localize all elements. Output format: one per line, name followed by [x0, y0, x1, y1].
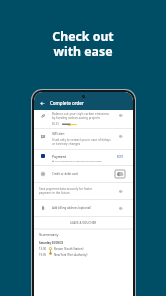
- button[interactable]: EDIT: [116, 154, 125, 160]
- staticText: Payment: [52, 154, 66, 158]
- button[interactable]: Toggle: [119, 114, 123, 117]
- staticText: SMS alert: [52, 132, 65, 136]
- staticText: LEAVE A VOUCHER: [70, 221, 97, 225]
- button[interactable]: Add billing address (optional): [34, 200, 133, 216]
- button[interactable]: Credit or debit card: [34, 166, 133, 182]
- staticText: This transaction is secured and encrypte…: [55, 159, 102, 162]
- staticText: or itinerary changes: [52, 142, 81, 146]
- staticText: Save payment data securely for faster: [39, 187, 93, 191]
- staticText: Boston (South Station): [54, 247, 84, 251]
- staticText: Saturday 03/05/33: [39, 241, 64, 245]
- staticText: payment in the future.: [39, 191, 71, 195]
- staticText: Add billing address (optional): [52, 206, 92, 210]
- staticText: Summary: [39, 231, 59, 237]
- button[interactable]: Toggle: [119, 135, 123, 138]
- staticText: Used only to contact you in case of dela…: [52, 138, 111, 142]
- staticText: 13:00: [39, 247, 47, 251]
- button[interactable]: Back: [40, 101, 45, 106]
- staticText: EDIT: [117, 155, 124, 159]
- button[interactable]: Save payment data securely for faster: [34, 183, 133, 199]
- staticText: Check out with ease: [52, 28, 114, 59]
- button[interactable]: Toggle: [119, 190, 123, 193]
- staticText: Credit or debit card: [52, 172, 78, 176]
- button[interactable]: Toggle: [119, 207, 123, 210]
- button[interactable]: SMS alert: [34, 129, 133, 149]
- staticText: Balance out your trip's carbon emissions: [52, 112, 110, 116]
- staticText: $0.33: [52, 122, 59, 126]
- staticText: Complete order: [50, 100, 84, 106]
- button[interactable]: LEAVE A VOUCHER: [34, 217, 133, 228]
- button[interactable]: Balance out your trip's carbon emissions: [34, 110, 133, 128]
- staticText: by funding carbon-saving projects: [52, 116, 100, 120]
- staticText: 19:05: [39, 253, 47, 257]
- staticText: New York (Port Authority): [54, 253, 88, 257]
